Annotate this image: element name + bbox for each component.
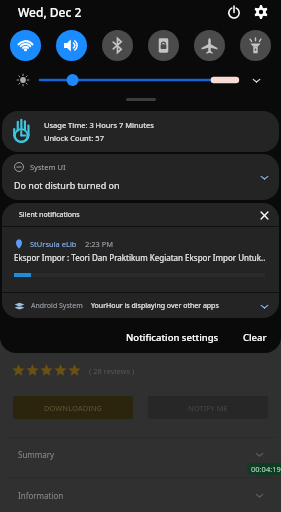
staticText: 2:23 PM [85, 239, 114, 249]
button[interactable]: Settings [250, 1, 272, 23]
staticText: 00:04:19 [251, 464, 281, 474]
button[interactable]: Clear [237, 325, 273, 350]
button[interactable]: Flashlight [240, 30, 271, 61]
button[interactable]: NOTIFY ME [148, 396, 268, 419]
staticText: Android System [31, 301, 83, 311]
staticText: Unlock Count: 57 [44, 133, 104, 143]
staticText: Wed, Dec 2 [18, 4, 82, 20]
button[interactable]: Usage Time: 3 Hours 7 Minutes [2, 111, 279, 152]
staticText: Information [18, 490, 64, 501]
button[interactable]: Clear silent notifications [253, 204, 275, 226]
staticText: NOTIFY ME [188, 403, 228, 413]
staticText: Summary [18, 449, 55, 460]
staticText: Silent notifications [19, 210, 80, 220]
staticText: System UI [30, 162, 66, 172]
staticText: Do not disturb turned on [14, 179, 120, 191]
staticText: StUrsula eLib [30, 239, 77, 249]
button[interactable]: Android System [2, 293, 279, 318]
button[interactable]: Auto rotate [148, 30, 179, 61]
button[interactable]: Wi-Fi [10, 30, 41, 61]
button[interactable]: StUrsula eLib [2, 227, 279, 292]
staticText: Ekspor Impor : Teori Dan Praktikum Kegia… [14, 252, 266, 263]
button[interactable]: Brightness [38, 69, 239, 91]
button[interactable]: DOWNLOADING [13, 396, 133, 419]
button[interactable]: Summary [0, 437, 281, 471]
button[interactable]: Silent notifications [2, 203, 279, 226]
button[interactable]: Power [223, 1, 245, 23]
button[interactable]: Information [0, 478, 281, 512]
button[interactable]: Sound [56, 30, 87, 61]
button[interactable]: Notification settings [120, 325, 225, 350]
button[interactable]: Expand notification [253, 166, 275, 188]
staticText: Clear [243, 331, 267, 344]
staticText: ( 28 reviews ) [89, 366, 135, 376]
staticText: Usage Time: 3 Hours 7 Minutes [44, 120, 154, 130]
staticText: DOWNLOADING [44, 403, 103, 413]
button[interactable]: Expand notification [253, 295, 275, 317]
button[interactable]: System UI [2, 154, 279, 200]
button[interactable]: Airplane mode [194, 30, 225, 61]
button[interactable]: Expand quick settings [245, 69, 267, 91]
staticText: Notification settings [126, 331, 219, 344]
button[interactable]: Bluetooth [102, 30, 133, 61]
staticText: YourHour is displaying over other apps [91, 301, 219, 311]
